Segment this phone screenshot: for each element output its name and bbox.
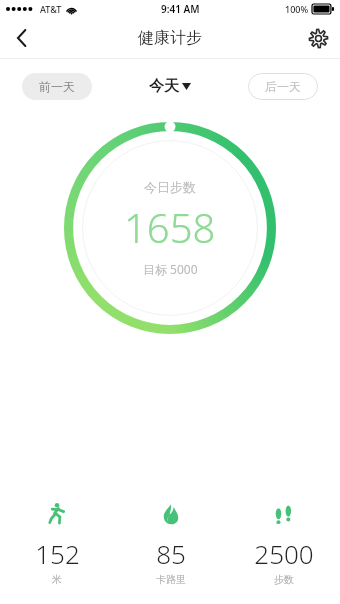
button[interactable]: 后一天 bbox=[248, 73, 318, 100]
button[interactable]: 2500 bbox=[227, 498, 340, 590]
staticText: 152 bbox=[35, 536, 80, 571]
staticText: 卡路里 bbox=[156, 573, 186, 586]
staticText: 今天 bbox=[149, 77, 179, 96]
staticText: AT&T bbox=[40, 3, 62, 15]
staticText: 85 bbox=[156, 536, 186, 571]
staticText: 后一天 bbox=[265, 79, 301, 94]
staticText: 100% bbox=[285, 3, 309, 15]
button[interactable]: 今天 bbox=[145, 73, 195, 100]
staticText: 1658 bbox=[124, 200, 216, 254]
button[interactable]: 85 bbox=[114, 498, 227, 590]
button[interactable]: 152 bbox=[0, 498, 114, 590]
staticText: 9:41 AM bbox=[161, 2, 200, 16]
button[interactable]: Back bbox=[0, 18, 44, 58]
button[interactable]: 前一天 bbox=[22, 73, 92, 100]
staticText: 今日步数 bbox=[144, 179, 196, 195]
staticText: 健康计步 bbox=[138, 28, 202, 48]
staticText: 目标 5000 bbox=[143, 261, 198, 277]
staticText: 步数 bbox=[274, 573, 294, 586]
staticText: 米 bbox=[52, 573, 62, 586]
staticText: 2500 bbox=[254, 536, 314, 571]
button[interactable]: Settings bbox=[296, 18, 340, 58]
staticText: 前一天 bbox=[39, 79, 75, 94]
